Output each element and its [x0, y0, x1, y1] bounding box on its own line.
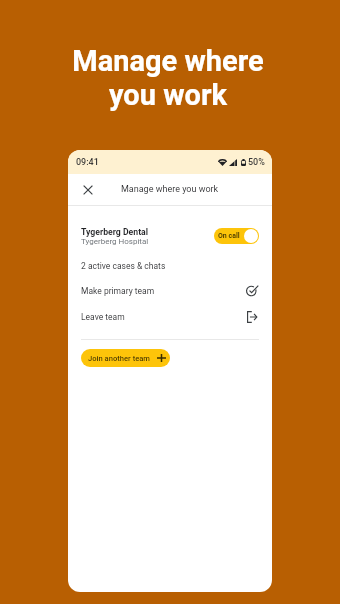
staticText: 2 active cases & chats	[81, 261, 166, 271]
button[interactable]: Tygerberg Dental	[68, 206, 272, 253]
staticText: Tygerberg Hospital	[81, 237, 149, 246]
button[interactable]: 2 active cases & chats	[68, 253, 272, 278]
staticText: Join another team	[88, 354, 150, 363]
staticText: Make primary team	[81, 286, 246, 296]
button[interactable]: Leave team	[68, 304, 272, 330]
staticText: 09:41	[76, 157, 99, 168]
staticText: Manage where you work	[121, 184, 219, 195]
button[interactable]: Join another team	[81, 349, 170, 367]
button[interactable]: Make primary team	[68, 278, 272, 304]
staticText: 50%	[248, 157, 265, 168]
staticText: On call	[218, 232, 240, 240]
staticText: Manage where you work	[72, 44, 264, 112]
other: Leave team	[247, 311, 259, 323]
staticText: Tygerberg Dental	[81, 227, 149, 237]
button[interactable]: Close	[78, 180, 98, 200]
button[interactable]: On call	[214, 228, 259, 244]
other: Make primary team	[246, 285, 259, 297]
staticText: Leave team	[81, 312, 247, 322]
